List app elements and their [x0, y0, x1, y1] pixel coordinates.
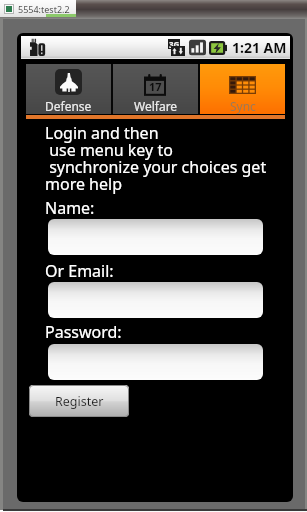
staticText: Password: [45, 321, 122, 343]
staticText: Name: [45, 197, 95, 219]
button[interactable]: Sync [200, 64, 285, 114]
staticText: 17 [149, 79, 162, 94]
button[interactable] [48, 219, 263, 255]
staticText: Sync [230, 98, 256, 114]
button[interactable]: 17 [113, 64, 198, 114]
staticText: Register [55, 393, 104, 410]
button[interactable]: Register [29, 385, 129, 417]
staticText: 3G [169, 39, 180, 49]
staticText: 1:21 AM [232, 38, 287, 57]
button[interactable] [48, 344, 263, 380]
button[interactable] [48, 282, 263, 318]
staticText: Welfare [134, 98, 178, 114]
button[interactable]: Defense [26, 64, 111, 114]
staticText: Defense [45, 98, 92, 114]
staticText: Or Email: [45, 260, 114, 282]
staticText: Login and then use menu key to synchroni… [45, 122, 267, 195]
staticText: 5554:test2.2 [18, 3, 70, 15]
